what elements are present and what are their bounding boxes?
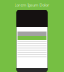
staticText: Lorem Ipsum Dolor: [14, 2, 49, 8]
